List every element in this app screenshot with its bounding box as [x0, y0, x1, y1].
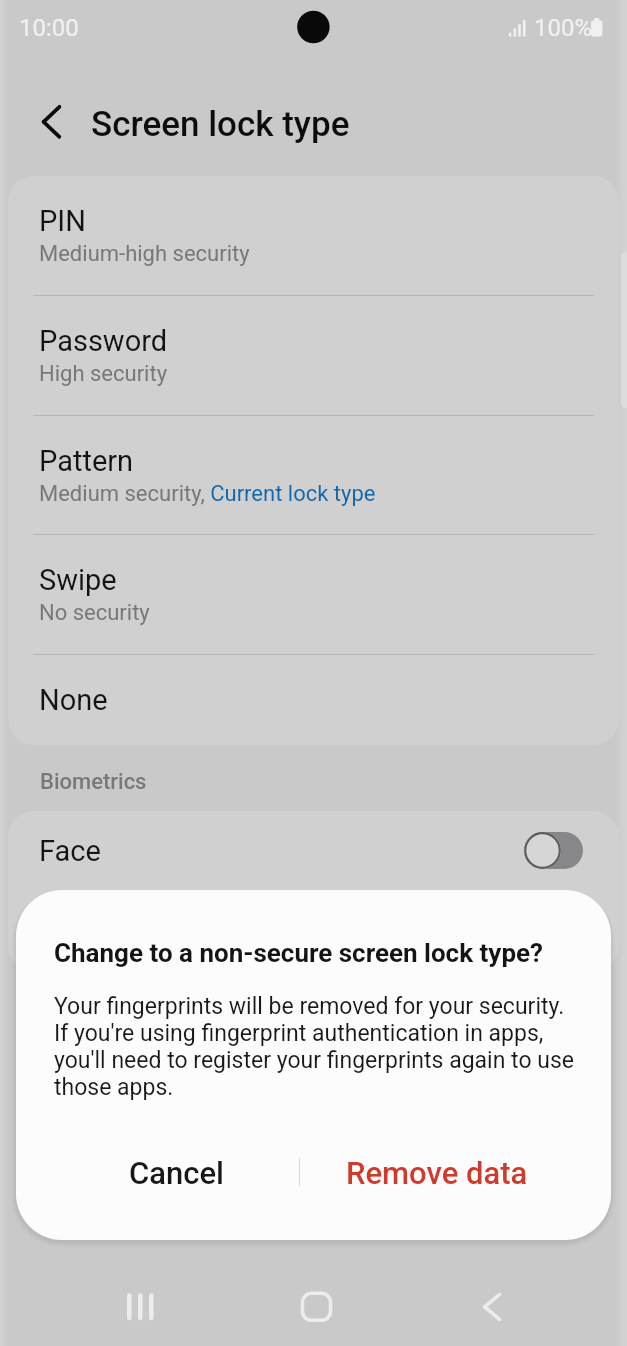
button[interactable]: Home — [276, 1272, 358, 1342]
button[interactable]: Back — [451, 1272, 533, 1342]
button[interactable]: None — [8, 655, 619, 745]
button[interactable]: Cancel — [44, 1137, 308, 1209]
staticText: Swipe — [39, 563, 117, 597]
staticText: 10:00 — [19, 14, 79, 42]
button[interactable]: Password — [8, 296, 619, 415]
staticText: Screen lock type — [91, 104, 350, 145]
staticText: PIN — [39, 204, 86, 238]
staticText: No security — [39, 600, 150, 626]
staticText: Medium security, Current lock type — [39, 481, 376, 507]
staticText: Change to a non-secure screen lock type? — [54, 938, 543, 968]
button[interactable]: Remove data — [305, 1137, 569, 1209]
staticText: 100% — [534, 14, 593, 42]
staticText: Password — [39, 324, 168, 358]
button[interactable]: Navigate up — [24, 96, 78, 150]
staticText: None — [39, 683, 108, 717]
button[interactable]: Pattern — [8, 416, 619, 535]
staticText: Your fingerprints will be removed for yo… — [54, 993, 574, 1101]
staticText: Remove data — [346, 1155, 528, 1191]
staticText: High security — [39, 361, 168, 387]
button[interactable]: Swipe — [8, 535, 619, 654]
staticText: Face — [39, 834, 101, 868]
staticText: Biometrics — [40, 769, 147, 795]
staticText: Medium-high security — [39, 241, 250, 267]
button[interactable]: Recent apps — [100, 1272, 182, 1342]
staticText: Pattern — [39, 444, 134, 478]
button[interactable]: PIN — [8, 176, 619, 295]
staticText: Cancel — [129, 1155, 224, 1191]
button[interactable]: Face — [8, 811, 619, 890]
